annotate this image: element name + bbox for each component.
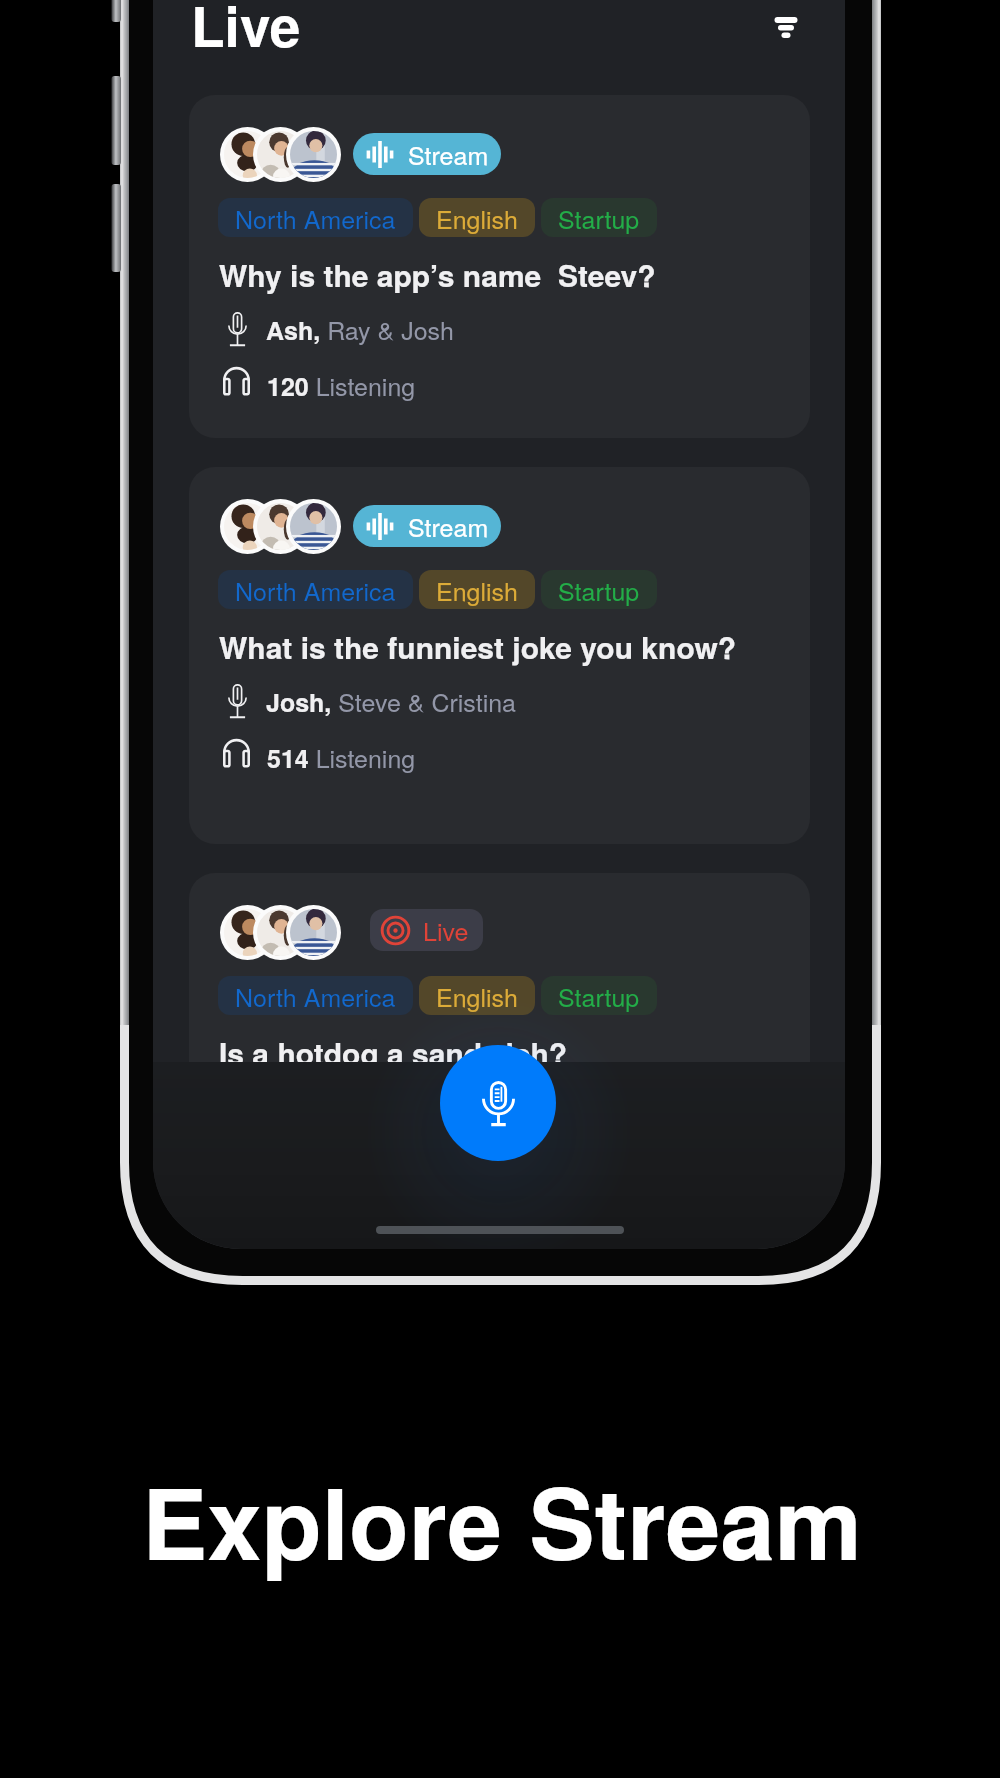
button[interactable]: North America xyxy=(218,198,413,237)
button[interactable]: Start a room xyxy=(440,1045,556,1161)
button[interactable]: Startup xyxy=(541,198,657,237)
button[interactable]: Stream xyxy=(353,133,501,175)
staticText: Startup xyxy=(558,978,640,1014)
staticText: Explore Stream xyxy=(142,1450,862,1590)
button[interactable]: English xyxy=(419,976,535,1015)
staticText: North America xyxy=(235,200,396,236)
staticText: Ash, Ray & Josh xyxy=(266,311,454,347)
staticText: Is a hotdog a sandwich? xyxy=(219,1031,568,1074)
staticText: Mia, Ana & Ben xyxy=(266,1089,442,1125)
staticText: English xyxy=(436,572,518,608)
button[interactable]: North America xyxy=(218,570,413,609)
staticText: Startup xyxy=(558,200,640,236)
staticText: Stream xyxy=(408,508,489,544)
staticText: North America xyxy=(235,978,396,1014)
button[interactable]: Live xyxy=(191,0,301,64)
staticText: Why is the app’s name Steev? xyxy=(219,253,656,296)
staticText: Josh, Steve & Cristina xyxy=(266,683,516,719)
button[interactable]: Stream xyxy=(353,505,501,547)
staticText: 120 Listening xyxy=(267,367,416,403)
button[interactable]: Stream xyxy=(189,467,810,844)
button[interactable]: Stream xyxy=(189,95,810,438)
button[interactable]: North America xyxy=(218,976,413,1015)
staticText: Stream xyxy=(408,136,489,172)
staticText: What is the funniest joke you know? xyxy=(219,625,737,668)
staticText: English xyxy=(436,200,518,236)
staticText: 514 Listening xyxy=(267,739,416,775)
button[interactable]: English xyxy=(419,570,535,609)
button[interactable]: Live xyxy=(189,873,810,1249)
button[interactable]: Filter xyxy=(755,2,817,64)
button[interactable]: Startup xyxy=(541,570,657,609)
staticText: English xyxy=(436,978,518,1014)
staticText: Startup xyxy=(558,572,640,608)
button[interactable]: English xyxy=(419,198,535,237)
button[interactable]: Startup xyxy=(541,976,657,1015)
staticText: Live xyxy=(423,912,469,948)
staticText: North America xyxy=(235,572,396,608)
button[interactable]: Live xyxy=(370,909,483,951)
